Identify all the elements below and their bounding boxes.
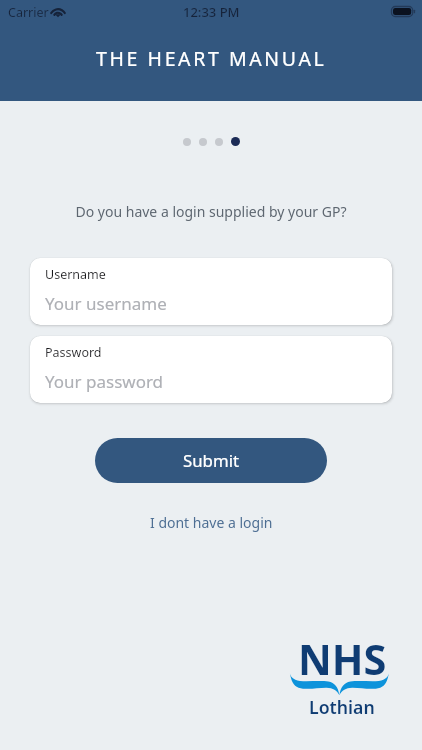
- button[interactable]: [231, 137, 240, 146]
- button[interactable]: I dont have a login: [142, 509, 281, 536]
- staticText: Password: [45, 344, 102, 361]
- staticText: NHS: [298, 631, 387, 688]
- staticText: Your username: [45, 292, 167, 315]
- staticText: Do you have a login supplied by your GP?: [0, 202, 422, 221]
- button[interactable]: Submit: [95, 438, 327, 483]
- button[interactable]: Password: [30, 336, 392, 403]
- button[interactable]: Username: [30, 258, 392, 325]
- staticText: Lothian: [309, 695, 375, 719]
- staticText: THE HEART MANUAL: [96, 45, 327, 72]
- button[interactable]: [215, 138, 223, 146]
- staticText: I dont have a login: [150, 513, 273, 532]
- staticText: Submit: [183, 449, 240, 472]
- staticText: Carrier: [8, 4, 49, 21]
- button[interactable]: [183, 138, 191, 146]
- button[interactable]: [199, 138, 207, 146]
- staticText: 12:33 PM: [183, 3, 240, 21]
- staticText: Username: [45, 266, 106, 283]
- staticText: Your password: [45, 370, 164, 393]
